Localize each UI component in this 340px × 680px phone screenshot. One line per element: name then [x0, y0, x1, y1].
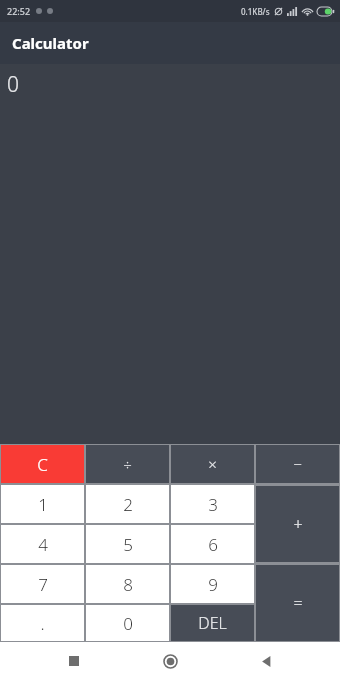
button[interactable]: 3: [171, 485, 254, 523]
staticText: 0: [123, 612, 133, 635]
staticText: ÷: [123, 454, 132, 474]
button[interactable]: 7: [1, 565, 84, 603]
staticText: 9: [208, 573, 218, 596]
button[interactable]: =: [256, 565, 339, 641]
staticText: =: [293, 592, 303, 614]
button[interactable]: ×: [171, 445, 254, 483]
staticText: Calculator: [12, 33, 89, 53]
staticText: ×: [208, 454, 217, 474]
staticText: 22:52: [7, 5, 31, 17]
staticText: 7: [38, 573, 48, 596]
staticText: 3: [208, 493, 218, 516]
staticText: 0.1KB/s: [241, 6, 270, 17]
button[interactable]: DEL: [171, 605, 254, 641]
staticText: 1: [38, 493, 48, 516]
staticText: 4: [38, 533, 48, 556]
button[interactable]: ÷: [86, 445, 169, 483]
staticText: 5: [123, 533, 133, 556]
button[interactable]: Back: [244, 642, 288, 680]
button[interactable]: 0: [86, 605, 169, 641]
button[interactable]: 2: [86, 485, 169, 523]
staticText: +: [293, 513, 303, 535]
button[interactable]: .: [1, 605, 84, 641]
staticText: −: [293, 454, 302, 474]
button[interactable]: Recent apps: [52, 642, 96, 680]
button[interactable]: 8: [86, 565, 169, 603]
staticText: 6: [208, 533, 218, 556]
button[interactable]: 6: [171, 525, 254, 563]
button[interactable]: 9: [171, 565, 254, 603]
staticText: DEL: [198, 612, 227, 634]
button[interactable]: C: [1, 445, 84, 483]
button[interactable]: Home: [148, 642, 192, 680]
button[interactable]: +: [256, 486, 339, 562]
staticText: 0: [7, 70, 19, 99]
staticText: 8: [123, 573, 133, 596]
button[interactable]: −: [256, 445, 339, 483]
button[interactable]: 4: [1, 525, 84, 563]
staticText: C: [37, 453, 48, 476]
staticText: 2: [123, 493, 133, 516]
button[interactable]: 1: [1, 485, 84, 523]
staticText: .: [40, 612, 45, 635]
button[interactable]: 5: [86, 525, 169, 563]
